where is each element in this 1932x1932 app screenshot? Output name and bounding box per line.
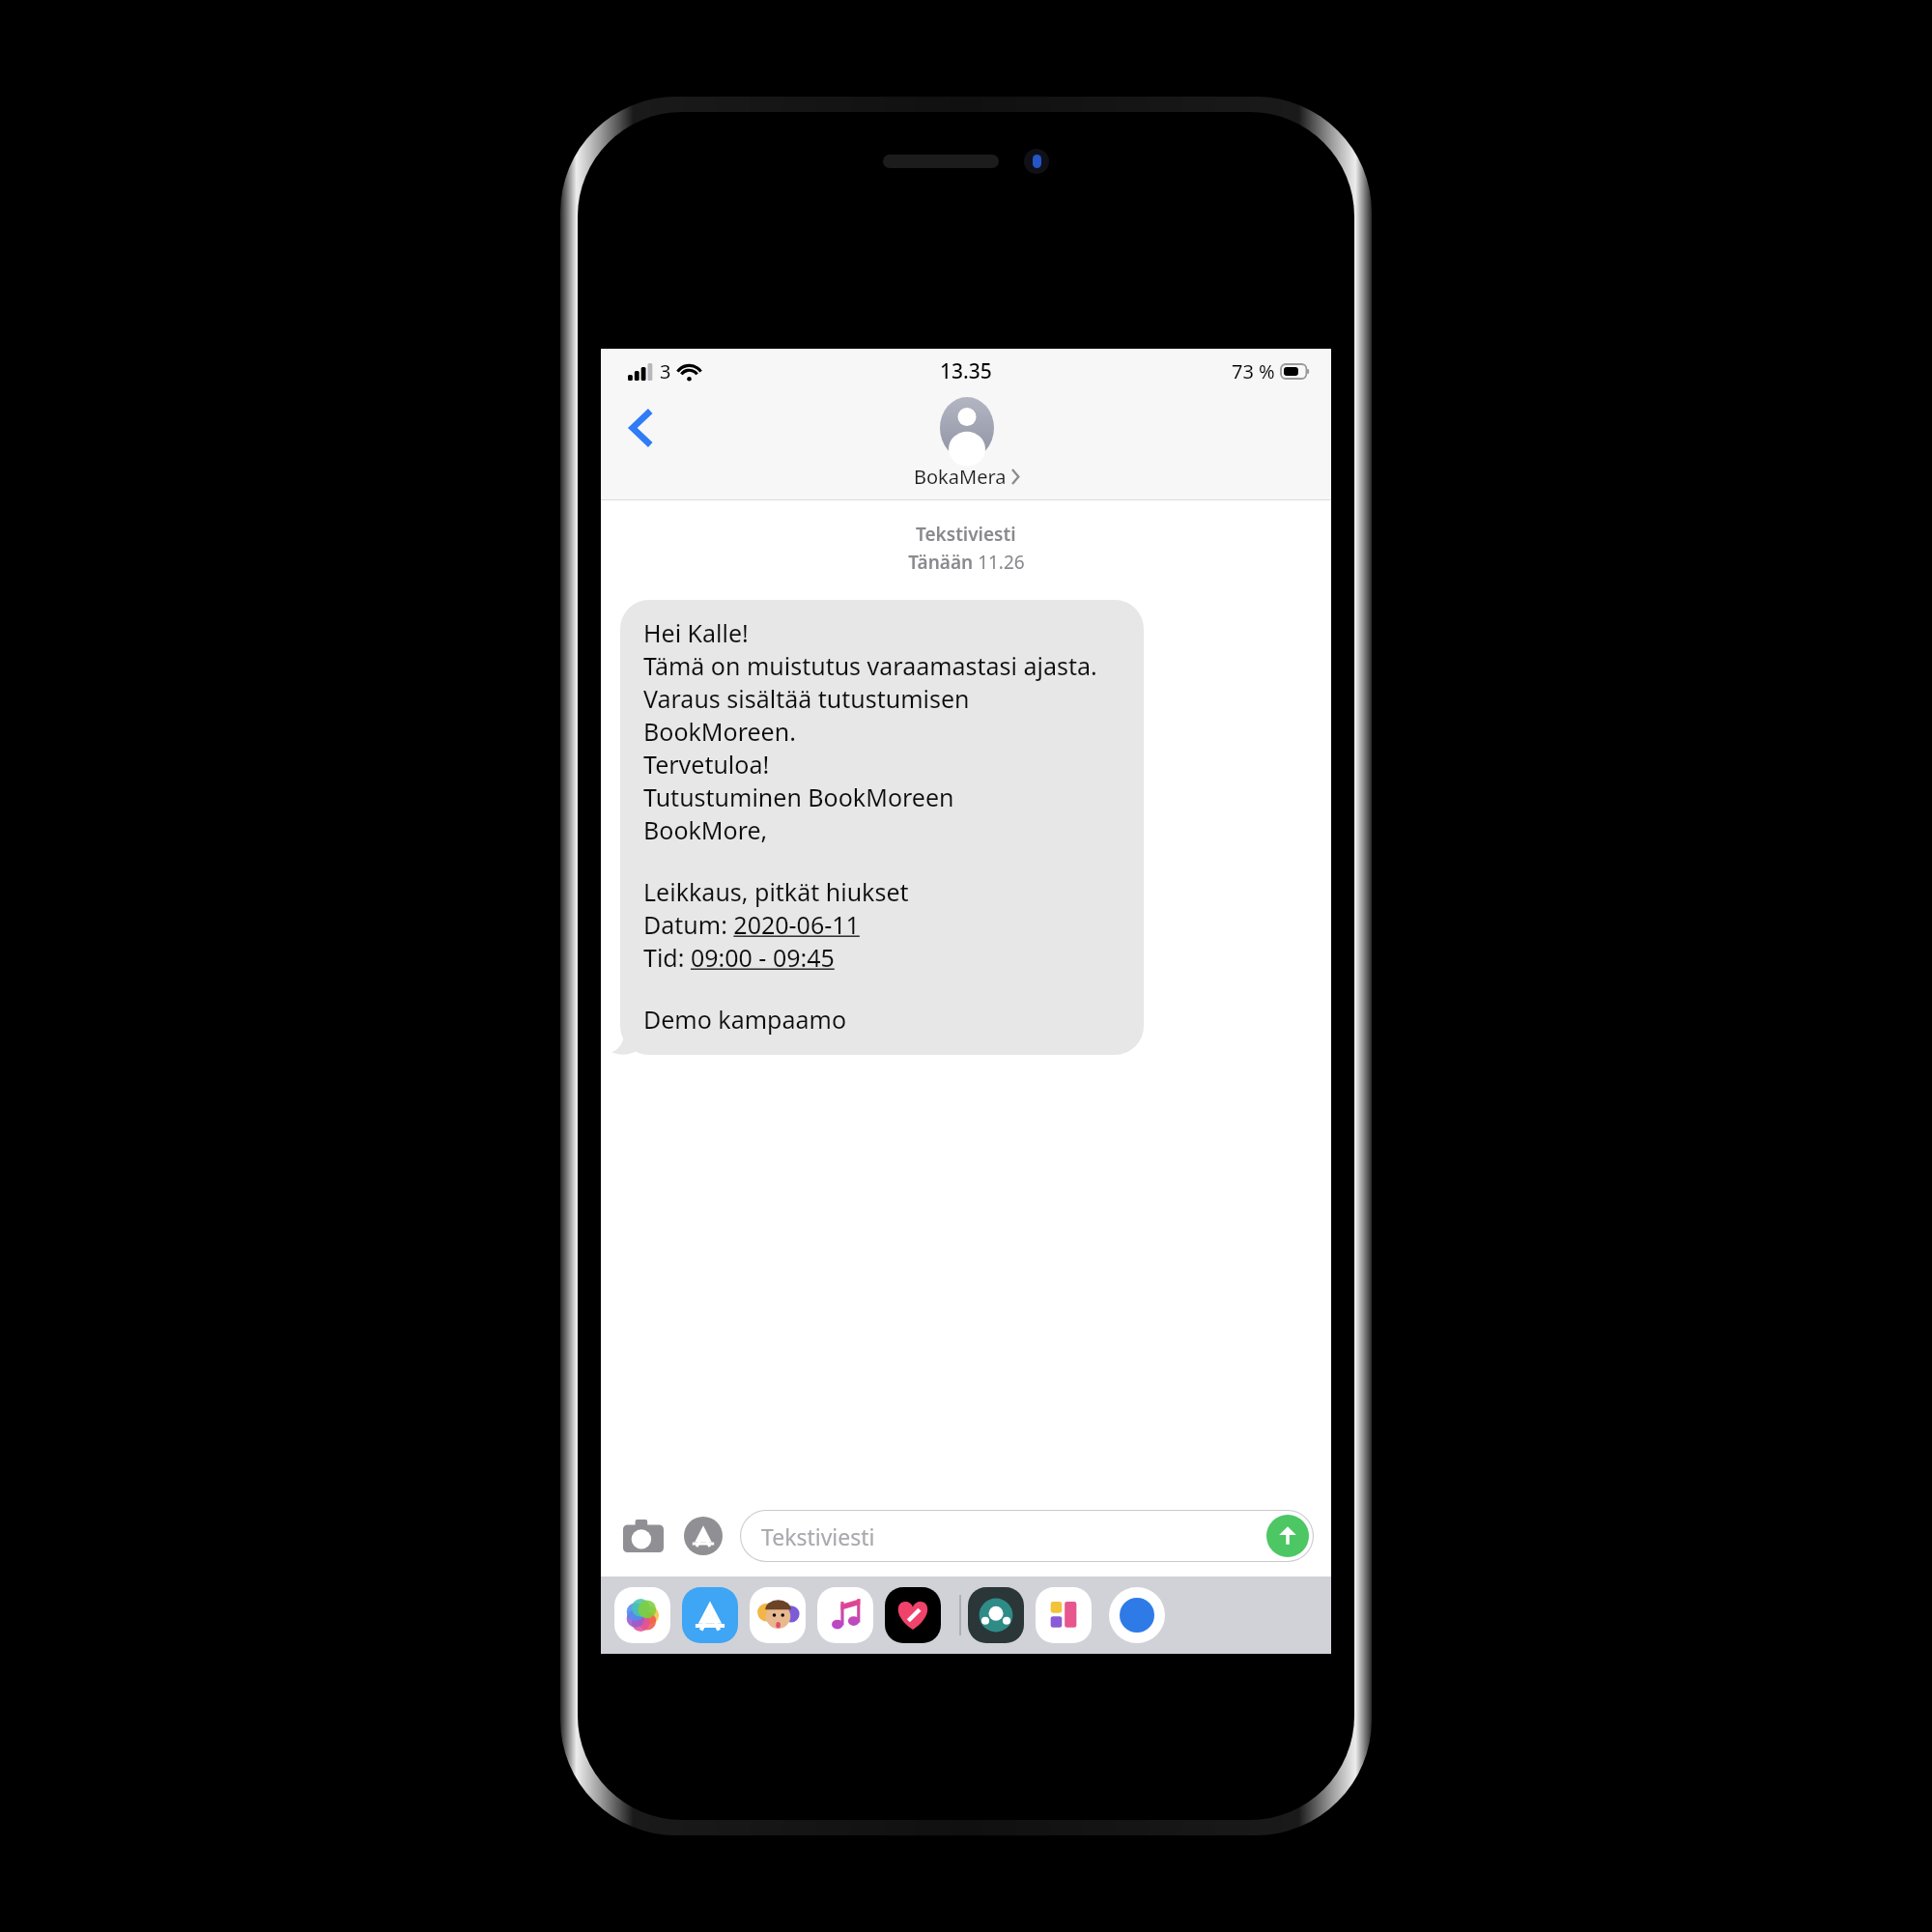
staticText: Leikkaus, pitkät hiukset bbox=[643, 875, 909, 908]
button[interactable]: App bbox=[682, 1587, 738, 1643]
staticText: Tervetuloa! bbox=[643, 748, 770, 781]
staticText: Demo kampaamo bbox=[643, 1003, 847, 1036]
button[interactable]: Hei Kalle! bbox=[620, 600, 1144, 1055]
button[interactable]: App bbox=[968, 1587, 1024, 1643]
staticText: Tänään 11.26 bbox=[908, 550, 1025, 575]
button[interactable]: App Store bbox=[678, 1511, 728, 1561]
button[interactable]: BokaMera bbox=[914, 393, 1019, 490]
staticText: 13.35 bbox=[940, 357, 992, 385]
staticText: 73 % bbox=[1232, 358, 1275, 384]
staticText: Tutustuminen BookMoreen bbox=[643, 781, 954, 813]
button[interactable]: Send bbox=[1266, 1515, 1309, 1557]
button[interactable]: App bbox=[1036, 1587, 1092, 1643]
button[interactable]: Back bbox=[614, 401, 668, 455]
button[interactable]: App bbox=[817, 1587, 873, 1643]
staticText: BookMoreen. bbox=[643, 715, 796, 748]
staticText: Tekstiviesti bbox=[761, 1521, 875, 1551]
button[interactable]: More apps bbox=[1109, 1587, 1165, 1643]
staticText: Tekstiviesti bbox=[916, 522, 1016, 547]
button[interactable]: App bbox=[614, 1587, 670, 1643]
staticText: BokaMera bbox=[914, 464, 1007, 490]
staticText: Tämä on muistutus varaamastasi ajasta. bbox=[643, 649, 1097, 682]
staticText: Hei Kalle! bbox=[643, 616, 749, 649]
staticText: Datum: 2020-06-11 bbox=[643, 908, 860, 941]
staticText: Tid: 09:00 - 09:45 bbox=[643, 941, 835, 974]
button[interactable]: Camera bbox=[618, 1511, 668, 1561]
staticText: 3 bbox=[660, 358, 671, 384]
staticText: Varaus sisältää tutustumisen bbox=[643, 682, 970, 715]
button[interactable]: App bbox=[750, 1587, 806, 1643]
button[interactable]: App bbox=[885, 1587, 941, 1643]
button[interactable]: Tekstiviesti bbox=[740, 1510, 1314, 1562]
staticText: BookMore, bbox=[643, 813, 768, 846]
